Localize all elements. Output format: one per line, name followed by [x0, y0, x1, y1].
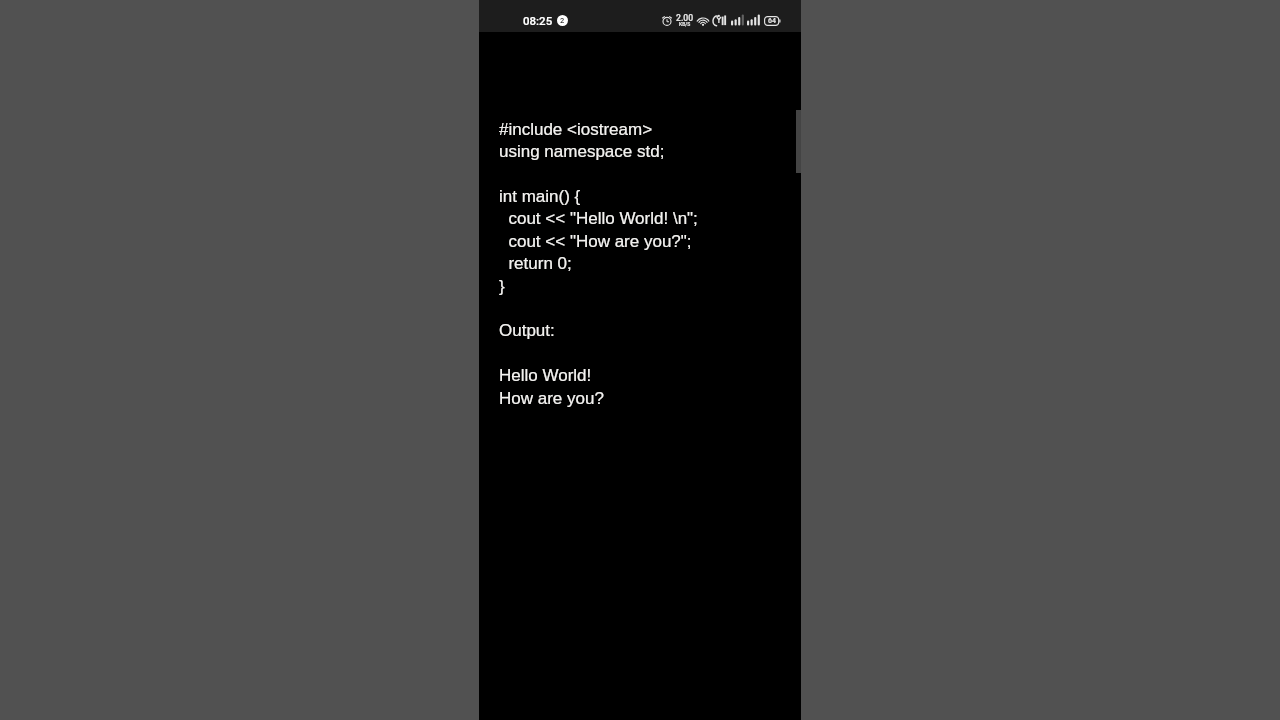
button[interactable]: 2 notifications: [557, 15, 568, 26]
button[interactable]: return 0;: [499, 251, 572, 274]
button[interactable]: }: [499, 274, 505, 297]
button[interactable]: How are you?: [499, 386, 604, 409]
button[interactable]: cout << "Hello World! \n";: [499, 206, 698, 229]
button[interactable]: Mobile signal 3 of 4 bars: [731, 15, 744, 26]
button[interactable]: Status bar: [479, 0, 801, 32]
button[interactable]: Network speed 2.00 KB per second: [676, 13, 694, 29]
button[interactable]: Mobile signal 4 of 4 bars: [747, 15, 760, 26]
staticText: 2: [560, 16, 565, 25]
staticText: 2.00: [676, 13, 694, 23]
button[interactable]: VoLTE calling: [713, 15, 727, 26]
button[interactable]: Wi-Fi connected: [698, 16, 708, 26]
button[interactable]: using namespace std;: [499, 139, 665, 162]
staticText: 64: [768, 17, 776, 25]
button[interactable]: Hello World!: [499, 363, 592, 386]
button[interactable]: #include <iostream>: [479, 0, 801, 720]
button[interactable]: #include <iostream>: [499, 117, 653, 140]
button[interactable]: Output:: [499, 318, 555, 341]
button[interactable]: cout << "How are you?";: [499, 229, 692, 252]
button[interactable]: int main() {: [499, 184, 581, 207]
staticText: KB/S: [679, 21, 691, 27]
button[interactable]: Battery 64 percent: [764, 16, 781, 26]
staticText: 08:25: [523, 14, 553, 27]
button[interactable]: Alarm set: [662, 15, 672, 26]
